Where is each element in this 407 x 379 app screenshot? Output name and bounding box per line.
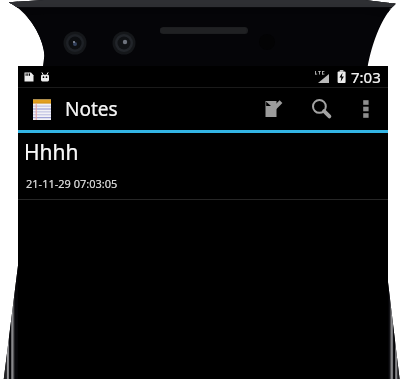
staticText: Notes xyxy=(65,96,118,122)
button[interactable]: Hhhh xyxy=(18,133,388,200)
staticText: 7:03 xyxy=(351,67,381,87)
button[interactable]: More options xyxy=(346,88,386,130)
staticText: Hhhh xyxy=(24,138,79,167)
button[interactable]: New note xyxy=(250,88,298,130)
button[interactable]: Search xyxy=(298,88,346,130)
staticText: 21-11-29 07:03:05 xyxy=(26,176,118,191)
